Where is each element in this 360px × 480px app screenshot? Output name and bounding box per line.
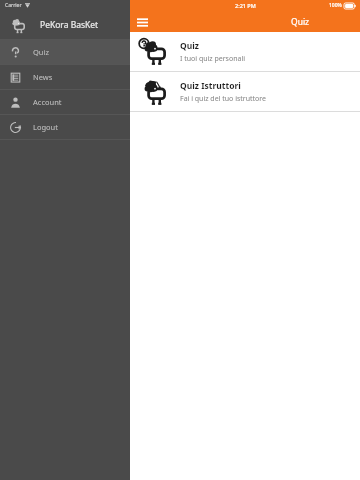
button[interactable]: Open navigation menu	[133, 13, 151, 31]
staticText: Quiz	[291, 16, 310, 28]
staticText: Logout	[33, 122, 58, 132]
button[interactable]: Quiz Istruttori	[130, 72, 360, 111]
staticText: I tuoi quiz personali	[180, 54, 246, 64]
button[interactable]: Account	[0, 90, 130, 114]
button[interactable]: Quiz	[0, 40, 130, 64]
staticText: News	[33, 72, 53, 82]
staticText: Quiz	[33, 47, 49, 57]
button[interactable]: Quiz	[130, 32, 360, 71]
staticText: Carrier	[5, 2, 22, 9]
staticText: Fai i quiz del tuo istruttore	[180, 94, 267, 104]
staticText: Quiz Istruttori	[180, 80, 241, 92]
staticText: 2:21 PM	[235, 2, 256, 9]
staticText: Account	[33, 97, 62, 107]
staticText: Quiz	[180, 40, 199, 52]
button[interactable]: News	[0, 65, 130, 89]
staticText: PeKora BasKet	[40, 19, 99, 31]
button[interactable]: Logout	[0, 115, 130, 139]
staticText: 100%	[329, 2, 342, 9]
